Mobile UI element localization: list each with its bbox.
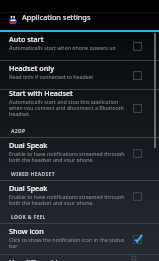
staticText: Show icon	[9, 226, 44, 236]
other: Unchecked	[131, 190, 144, 203]
staticText: Click to show the notification icon in t…	[9, 236, 125, 242]
other: Checked	[131, 233, 144, 246]
other: Unchecked	[131, 102, 144, 115]
staticText: when you connect and disconnect a Blueto…	[9, 104, 124, 110]
staticText: Read only if connected to headset	[9, 73, 94, 79]
staticText: A2DP	[11, 128, 26, 135]
staticText: both the headset and your phone.	[9, 156, 94, 162]
staticText: Enable to have notifications streamed th…	[9, 150, 125, 156]
staticText: Dual Speak	[9, 140, 48, 150]
button[interactable]: Unchecked	[0, 181, 159, 212]
button[interactable]: Unchecked	[0, 138, 159, 169]
staticText: Application settings	[22, 12, 91, 22]
staticText: bar	[9, 242, 18, 248]
other: Unchecked	[131, 40, 144, 53]
staticText: Enable to have notifications streamed th…	[9, 193, 125, 199]
other: Unchecked	[131, 69, 144, 82]
button[interactable]: Unchecked	[0, 32, 159, 61]
staticText: Automatically start and stop this applic…	[9, 98, 119, 104]
staticText: Dual Speak	[9, 183, 48, 193]
staticText: headset.	[9, 110, 31, 116]
staticText: Use different language	[9, 257, 88, 261]
staticText: Auto start	[9, 34, 44, 44]
other: Unchecked	[131, 147, 144, 160]
button[interactable]: Unchecked	[0, 255, 159, 261]
other: Unchecked	[131, 255, 144, 261]
staticText: both the headset and your phone.	[9, 199, 94, 205]
staticText: LOOK & FEEL	[11, 214, 46, 221]
button[interactable]: Unchecked	[0, 90, 159, 126]
staticText: Headset only	[9, 63, 54, 73]
button[interactable]: Unchecked	[0, 61, 159, 90]
staticText: WIRED HEADSET	[11, 171, 55, 178]
other: App icon	[9, 15, 17, 25]
staticText: Automatically start when phone powers up	[9, 44, 116, 50]
button[interactable]: Checked	[0, 224, 159, 255]
staticText: Start with Headset	[9, 88, 73, 98]
